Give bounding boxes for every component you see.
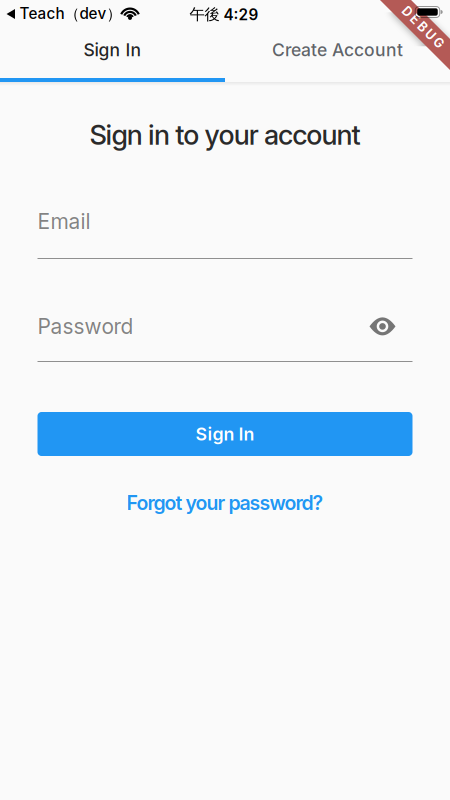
button[interactable]: Email <box>37 209 412 259</box>
staticText: DEBUG <box>396 20 449 35</box>
staticText: Teach（dev） <box>19 5 121 23</box>
staticText: Sign In <box>195 423 254 444</box>
staticText: Sign In <box>83 40 141 60</box>
button[interactable]: Create Account <box>225 30 450 82</box>
staticText: Forgot your password? <box>126 491 323 514</box>
staticText: Email <box>37 209 90 234</box>
button[interactable]: Sign In <box>37 412 412 456</box>
button[interactable]: Forgot your password? <box>126 491 323 514</box>
staticText: 午後 4:29 <box>189 5 258 24</box>
staticText: Sign in to your account <box>89 119 361 151</box>
button[interactable]: Password <box>37 314 412 362</box>
button[interactable]: Sign In <box>0 30 225 82</box>
button[interactable]: Teach（dev） <box>6 5 121 23</box>
staticText: Password <box>37 314 133 339</box>
staticText: Create Account <box>272 40 403 60</box>
